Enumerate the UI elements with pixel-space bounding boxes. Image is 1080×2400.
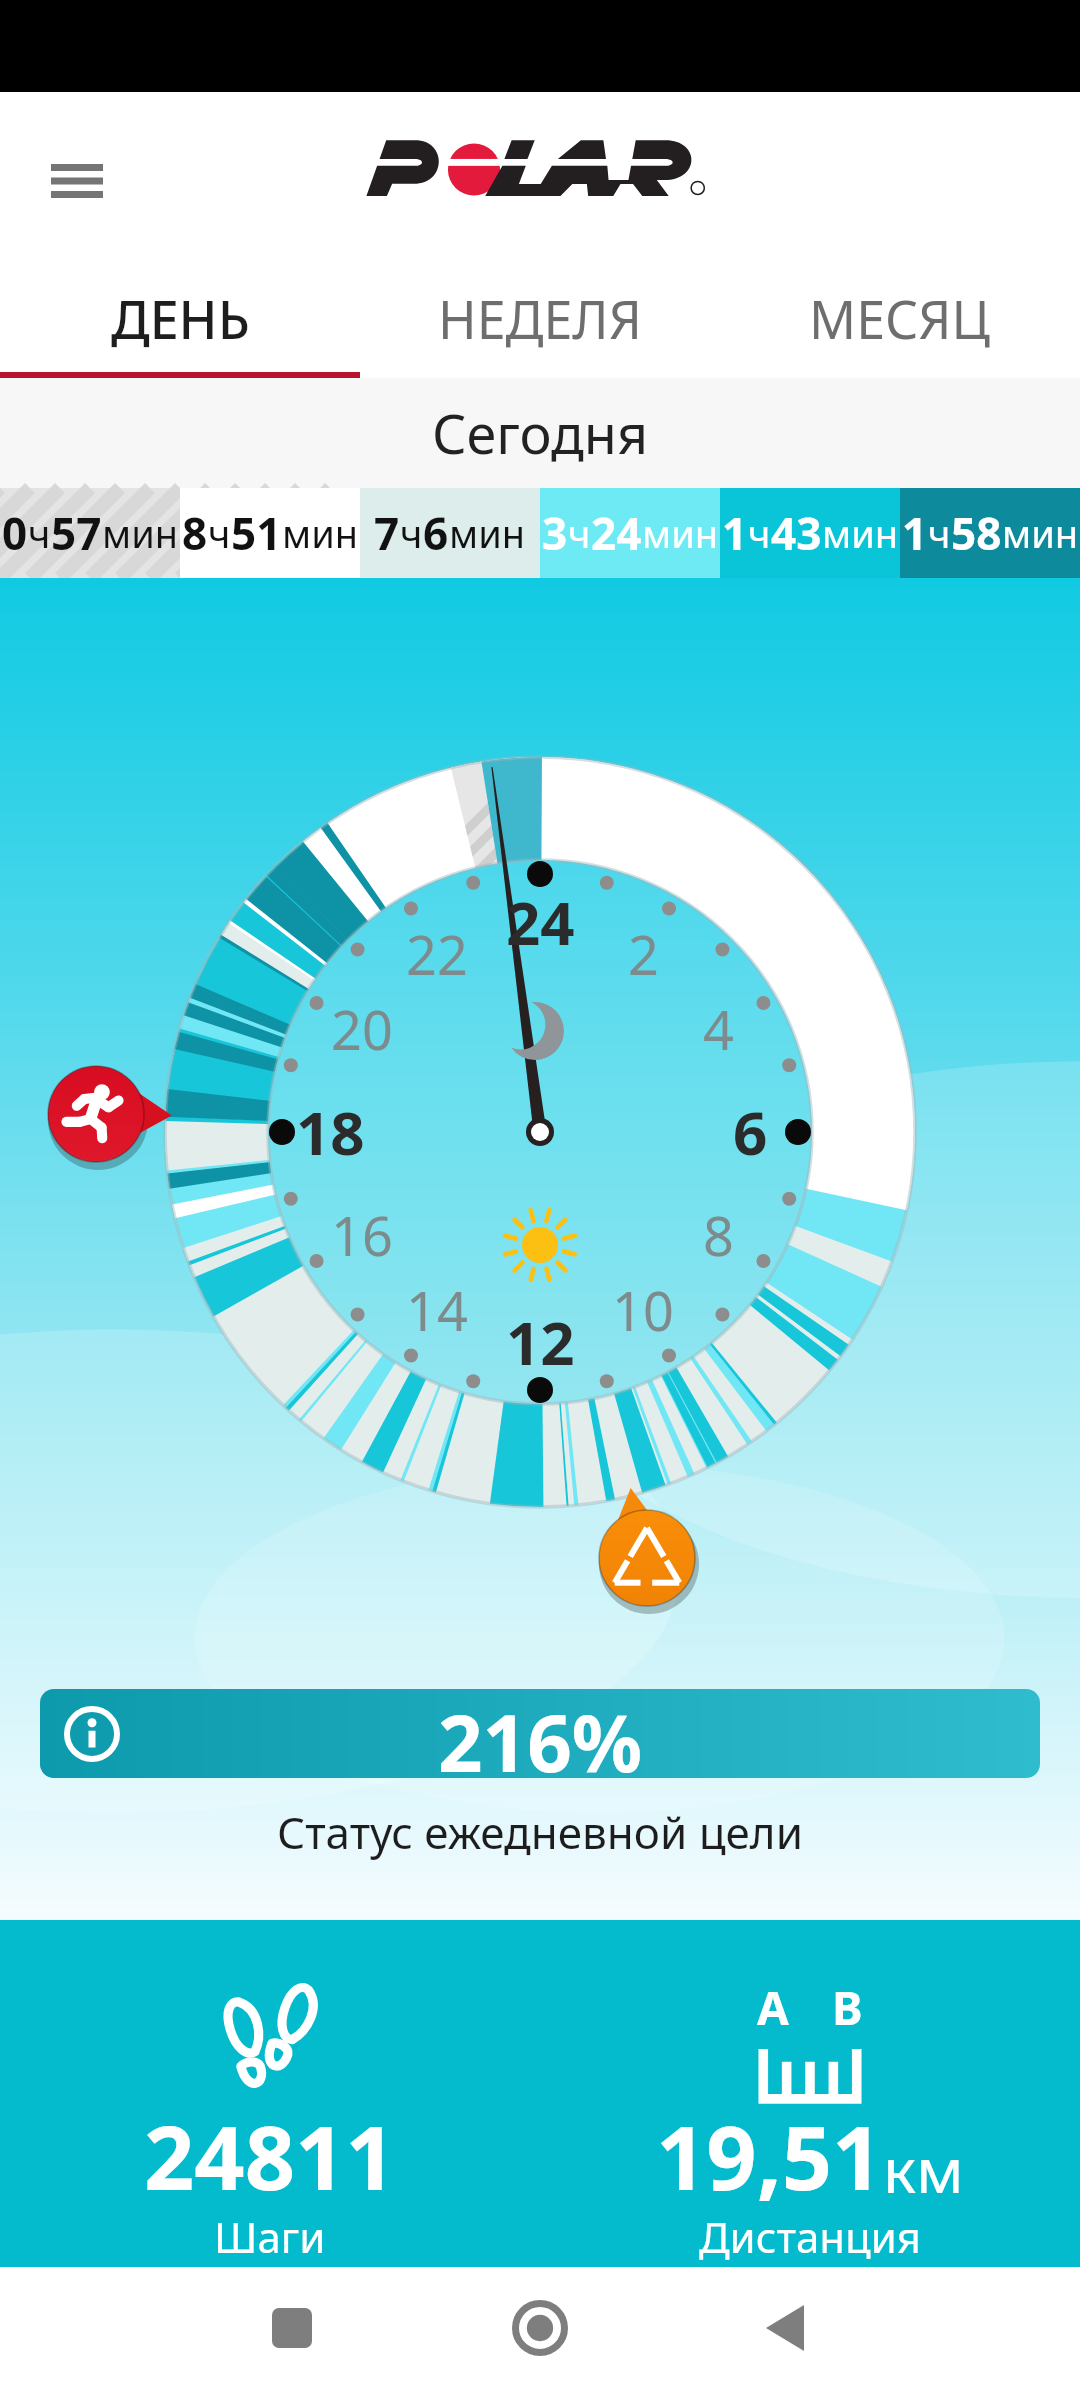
staticText: ч: [748, 507, 771, 559]
button[interactable]: 8: [180, 488, 360, 578]
staticText: МЕСЯЦ: [809, 283, 991, 354]
button[interactable]: НЕДЕЛЯ: [360, 265, 720, 372]
staticText: B: [832, 1976, 863, 2039]
staticText: км: [883, 2127, 964, 2211]
staticText: мин: [642, 507, 719, 559]
staticText: A: [757, 1976, 789, 2039]
staticText: Шаги: [214, 2208, 326, 2265]
staticText: 216%: [438, 1689, 643, 1778]
staticText: ч: [568, 507, 591, 559]
staticText: мин: [1002, 507, 1079, 559]
button[interactable]: Inactivity alert: [597, 1492, 697, 1610]
staticText: 18: [296, 1091, 365, 1173]
staticText: ДЕНЬ: [111, 283, 250, 354]
button[interactable]: Back: [715, 2267, 855, 2400]
button[interactable]: Menu: [13, 117, 141, 245]
staticText: Сегодня: [432, 396, 649, 470]
staticText: 24811: [144, 2096, 396, 2216]
button[interactable]: 7: [360, 488, 540, 578]
staticText: 7: [374, 503, 400, 563]
button[interactable]: ДЕНЬ: [0, 265, 360, 372]
staticText: 20: [331, 992, 393, 1066]
staticText: 2: [628, 917, 659, 991]
staticText: 6: [733, 1091, 768, 1173]
staticText: ч: [928, 507, 951, 559]
button[interactable]: 1: [720, 488, 900, 578]
staticText: 8: [703, 1198, 734, 1272]
staticText: 43: [771, 503, 822, 563]
staticText: 19,51: [656, 2096, 883, 2216]
staticText: 57: [51, 503, 102, 563]
button[interactable]: МЕСЯЦ: [720, 265, 1080, 372]
staticText: 12: [506, 1301, 575, 1383]
button[interactable]: Training session: [44, 1062, 176, 1174]
staticText: 24: [506, 881, 575, 963]
staticText: 1: [722, 503, 748, 563]
staticText: ч: [208, 507, 231, 559]
staticText: ч: [400, 507, 423, 559]
button[interactable]: Сегодня: [0, 378, 1080, 488]
staticText: 8: [182, 503, 208, 563]
staticText: 0: [2, 503, 28, 563]
staticText: мин: [102, 507, 179, 559]
staticText: 58: [951, 503, 1002, 563]
staticText: НЕДЕЛЯ: [438, 283, 642, 354]
button[interactable]: 24811: [0, 1920, 540, 2267]
staticText: ч: [28, 507, 51, 559]
button[interactable]: 1: [900, 488, 1080, 578]
staticText: мин: [282, 507, 359, 559]
staticText: мин: [449, 507, 526, 559]
staticText: 16: [331, 1198, 393, 1272]
button[interactable]: 216%: [40, 1689, 1040, 1778]
button[interactable]: A: [540, 1920, 1080, 2267]
staticText: 6: [423, 503, 449, 563]
staticText: 14: [406, 1273, 468, 1347]
staticText: 51: [231, 503, 282, 563]
staticText: 10: [612, 1273, 674, 1347]
button[interactable]: Home: [470, 2267, 610, 2400]
staticText: Статус ежедневной цели: [277, 1802, 804, 1862]
staticText: 1: [902, 503, 928, 563]
staticText: 3: [542, 503, 568, 563]
button[interactable]: Recents: [222, 2267, 362, 2400]
button[interactable]: 3: [540, 488, 720, 578]
staticText: мин: [822, 507, 899, 559]
button[interactable]: 0: [0, 488, 180, 578]
staticText: 24: [591, 503, 642, 563]
staticText: Дистанция: [699, 2208, 922, 2265]
staticText: 4: [703, 992, 734, 1066]
staticText: 22: [406, 917, 468, 991]
